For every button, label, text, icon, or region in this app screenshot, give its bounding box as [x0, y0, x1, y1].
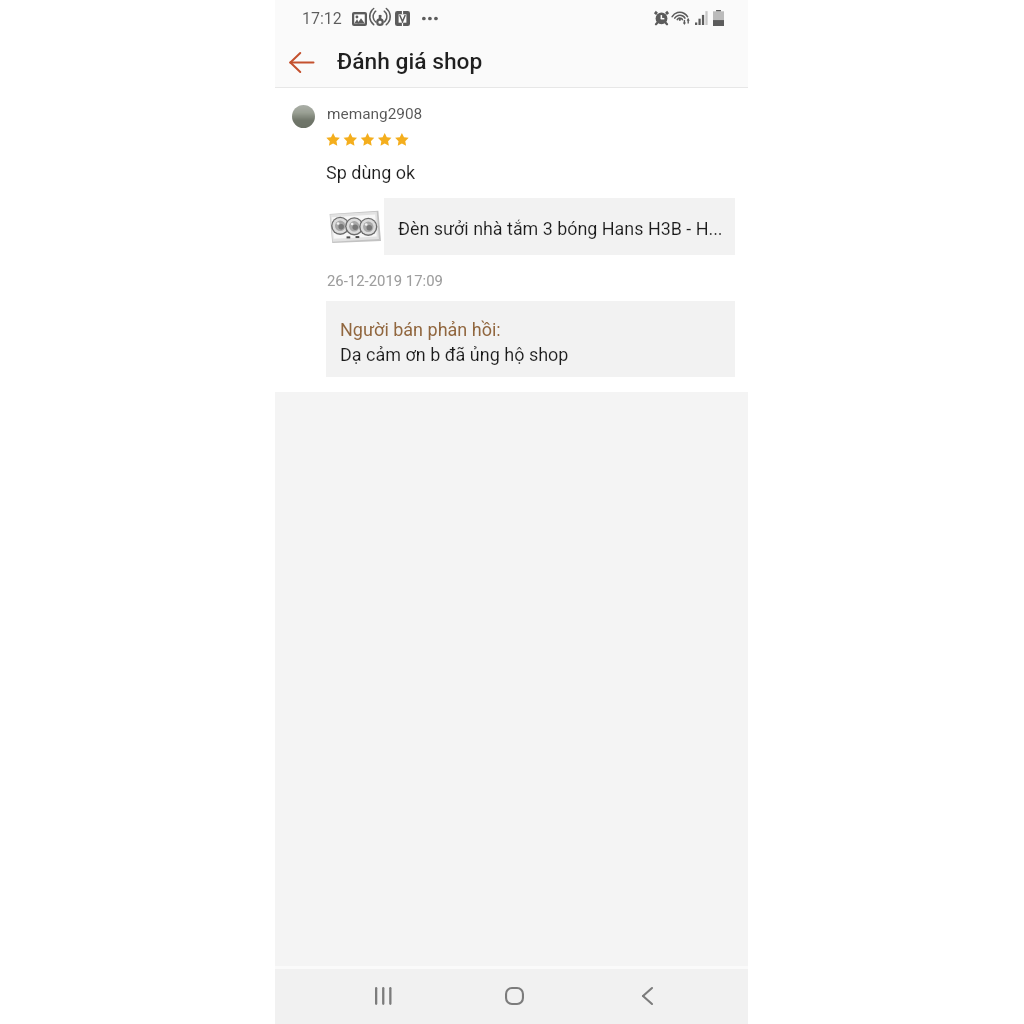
staticText: Người bán phản hồi: [340, 319, 501, 340]
button[interactable]: Đèn sưởi nhà tắm 3 bóng Hans H3B - H... [328, 198, 735, 255]
other: Reviewer avatar [292, 105, 315, 128]
staticText: Đèn sưởi nhà tắm 3 bóng Hans H3B - H... [398, 218, 723, 239]
staticText: Dạ cảm ơn b đã ủng hộ shop [340, 344, 569, 365]
button[interactable]: Người bán phản hồi: [326, 301, 735, 377]
button[interactable]: Home [488, 969, 540, 1022]
button[interactable]: Reviewer avatar [292, 103, 438, 129]
staticText: memang2908 [327, 105, 423, 123]
staticText: 26-12-2019 17:09 [327, 272, 443, 289]
staticText: 17:12 [302, 9, 342, 28]
staticText: Sp dùng ok [326, 162, 416, 183]
button[interactable]: Back [623, 969, 671, 1022]
staticText: Đánh giá shop [337, 48, 483, 75]
button[interactable]: Recents [358, 969, 408, 1022]
button[interactable]: Back [281, 42, 321, 82]
